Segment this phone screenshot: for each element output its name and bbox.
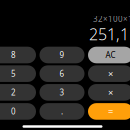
- staticText: 9: [59, 50, 64, 60]
- staticText: .: [61, 106, 63, 117]
- button[interactable]: 8: [0, 47, 36, 63]
- staticText: ×: [108, 86, 113, 99]
- button[interactable]: 5: [0, 65, 36, 82]
- staticText: 5: [11, 68, 16, 79]
- button[interactable]: =: [88, 103, 130, 120]
- button[interactable]: 9: [39, 47, 84, 63]
- button[interactable]: AC: [88, 47, 130, 63]
- button[interactable]: 2: [0, 84, 36, 101]
- staticText: 0: [11, 106, 16, 117]
- staticText: 8: [11, 50, 16, 60]
- button[interactable]: .: [39, 103, 84, 120]
- staticText: 2: [11, 87, 16, 98]
- staticText: AC: [105, 50, 115, 60]
- staticText: 251,1: [89, 23, 129, 45]
- button[interactable]: 3: [39, 84, 84, 101]
- staticText: 3: [59, 87, 64, 98]
- button[interactable]: 0: [0, 103, 36, 120]
- button[interactable]: 6: [39, 65, 84, 82]
- button[interactable]: ×: [88, 65, 130, 82]
- staticText: =: [108, 105, 113, 118]
- staticText: 32×100×1: [93, 14, 130, 24]
- staticText: 6: [59, 68, 64, 79]
- staticText: ×: [108, 67, 113, 80]
- button[interactable]: ×: [88, 84, 130, 101]
